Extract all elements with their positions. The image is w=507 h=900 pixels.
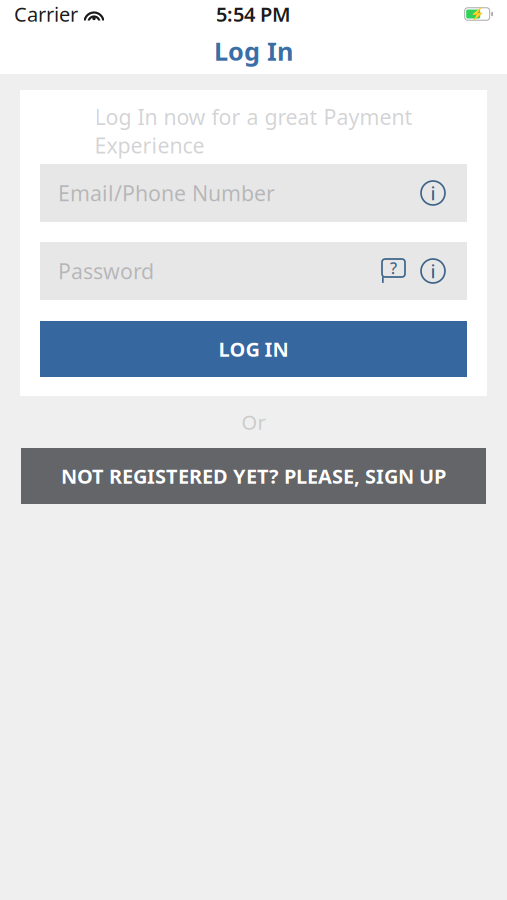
staticText: Or — [241, 409, 265, 435]
staticText: Log In now for a great Payment Experienc… — [94, 103, 412, 159]
staticText: 5:54 PM — [216, 1, 291, 27]
staticText: LOG IN — [218, 336, 288, 362]
button[interactable]: NOT REGISTERED YET? PLEASE, SIGN UP — [21, 448, 486, 504]
staticText: ⚡ — [470, 7, 485, 21]
staticText: Email/Phone Number — [58, 179, 275, 207]
button[interactable]: More information — [417, 177, 449, 209]
button[interactable]: Password hint — [378, 254, 409, 288]
button[interactable]: More information — [417, 255, 449, 287]
staticText: Password — [58, 257, 154, 285]
staticText: i — [430, 259, 435, 283]
staticText: i — [430, 181, 435, 205]
staticText: NOT REGISTERED YET? PLEASE, SIGN UP — [61, 463, 446, 489]
staticText: Log In — [214, 34, 293, 68]
staticText: Carrier — [14, 1, 78, 27]
staticText: ? — [390, 257, 397, 279]
button[interactable]: LOG IN — [40, 321, 467, 377]
